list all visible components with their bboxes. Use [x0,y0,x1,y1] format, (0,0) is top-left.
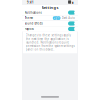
staticText: Haptics [25,27,34,31]
staticText: ⬛ ▮ [68,1,73,4]
button[interactable]: Sound Effects [22,21,78,26]
button[interactable]: Theme [22,15,78,21]
staticText: Notifications [25,11,42,14]
staticText: Auto [68,16,75,20]
button[interactable]: Haptics [22,26,78,32]
staticText: Light [53,16,60,20]
button[interactable]: Notifications [22,10,78,15]
staticText: Dark [62,16,67,20]
staticText: 9:41 [27,1,34,4]
staticText: Theme [25,16,34,20]
staticText: Sound Effects [25,22,43,25]
staticText: Changes to these settings apply the next… [25,33,74,51]
staticText: Settings [41,5,58,10]
